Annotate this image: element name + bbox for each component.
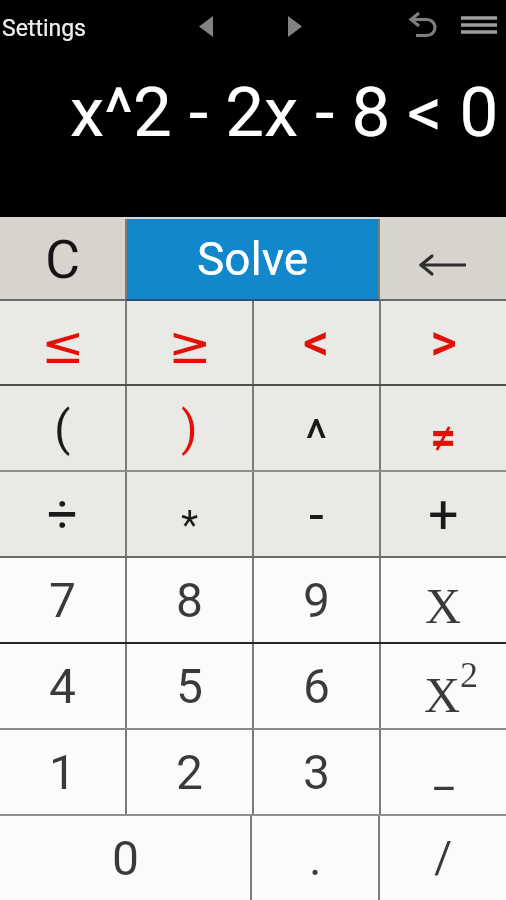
staticText: 2: [176, 744, 203, 800]
staticText: /: [434, 832, 453, 884]
staticText: <: [303, 312, 330, 373]
button[interactable]: .: [252, 816, 378, 900]
button[interactable]: ≥: [127, 301, 252, 384]
staticText: (: [54, 400, 71, 456]
button[interactable]: 4: [0, 644, 125, 728]
button[interactable]: 6: [254, 644, 379, 728]
button[interactable]: <: [254, 301, 379, 384]
button[interactable]: 3: [254, 730, 379, 814]
button[interactable]: 0: [0, 816, 250, 900]
button[interactable]: *: [127, 472, 252, 556]
staticText: 7: [49, 572, 76, 628]
staticText: Settings: [2, 15, 86, 42]
button[interactable]: (: [0, 386, 125, 470]
staticText: 1: [49, 744, 76, 800]
staticText: 5: [176, 658, 203, 714]
button[interactable]: [186, 6, 226, 46]
button[interactable]: -: [254, 472, 379, 556]
button[interactable]: 9: [254, 558, 379, 642]
button[interactable]: [455, 8, 503, 44]
staticText: .: [309, 830, 322, 886]
button[interactable]: [275, 6, 315, 46]
button[interactable]: +: [381, 472, 506, 556]
staticText: X: [425, 578, 462, 633]
staticText: x^2 - 2x - 8 < 0: [70, 72, 499, 153]
button[interactable]: ≠: [381, 386, 506, 470]
button[interactable]: 5: [127, 644, 252, 728]
staticText: X2: [424, 655, 479, 723]
button[interactable]: ^: [254, 386, 379, 470]
staticText: ≠: [430, 410, 457, 464]
button[interactable]: /: [380, 816, 506, 900]
button[interactable]: X: [381, 558, 506, 642]
button[interactable]: ÷: [0, 472, 125, 556]
staticText: 3: [303, 744, 330, 800]
staticText: 6: [303, 658, 330, 714]
staticText: 0: [112, 830, 139, 886]
button[interactable]: Solve: [127, 219, 378, 299]
button[interactable]: [380, 219, 506, 299]
staticText: Solve: [197, 232, 309, 286]
button[interactable]: 2: [127, 730, 252, 814]
staticText: *: [181, 502, 199, 549]
staticText: >: [430, 312, 458, 373]
button[interactable]: Settings: [0, 15, 86, 42]
button[interactable]: >: [381, 301, 506, 384]
button[interactable]: C: [0, 219, 125, 299]
staticText: ≤: [41, 315, 85, 376]
staticText: 9: [303, 572, 330, 628]
button[interactable]: ≤: [0, 301, 125, 384]
staticText: _: [434, 746, 454, 798]
button[interactable]: 7: [0, 558, 125, 642]
button[interactable]: 1: [0, 730, 125, 814]
button[interactable]: _: [381, 730, 506, 814]
staticText: C: [45, 228, 81, 291]
staticText: +: [428, 483, 459, 546]
button[interactable]: [403, 6, 443, 46]
staticText: 8: [176, 572, 203, 628]
staticText: ÷: [47, 483, 78, 546]
staticText: 4: [49, 658, 76, 714]
button[interactable]: X2: [381, 644, 506, 728]
button[interactable]: ): [127, 386, 252, 470]
button[interactable]: 8: [127, 558, 252, 642]
staticText: -: [309, 483, 324, 546]
staticText: ): [181, 400, 198, 456]
staticText: ≥: [168, 315, 212, 376]
staticText: ^: [305, 407, 328, 470]
